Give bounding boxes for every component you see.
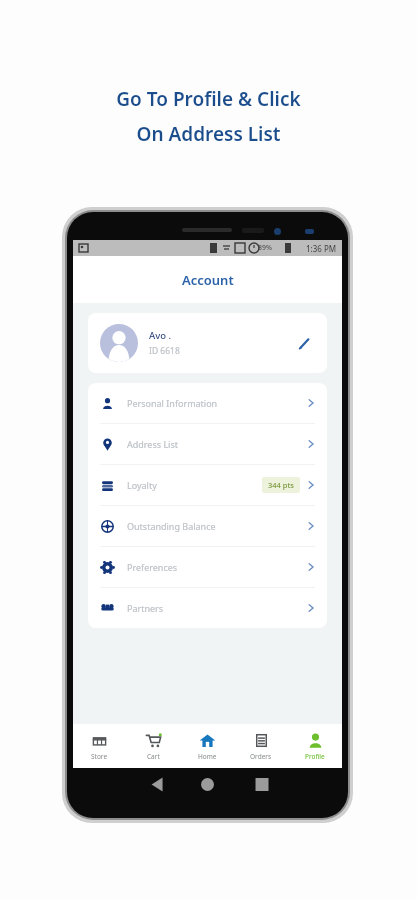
button[interactable]: Outstanding Balance: [88, 506, 327, 546]
staticText: Home: [198, 752, 217, 761]
button[interactable]: Orders: [234, 724, 288, 768]
button[interactable]: Cart: [126, 724, 180, 768]
staticText: Personal Information: [127, 397, 306, 409]
staticText: ID 6618: [149, 345, 180, 357]
button[interactable]: Address List: [88, 424, 327, 464]
button[interactable]: Preferences: [88, 547, 327, 587]
button[interactable]: Personal Information: [88, 383, 327, 423]
staticText: Account: [182, 271, 234, 289]
staticText: 89%: [258, 243, 272, 253]
staticText: Preferences: [127, 561, 306, 573]
staticText: 1:36 PM: [306, 243, 337, 254]
staticText: On Address List: [136, 121, 281, 147]
staticText: Cart: [147, 752, 160, 761]
button[interactable]: Edit profile: [293, 332, 315, 354]
button[interactable]: Avo .: [88, 313, 327, 373]
button[interactable]: Partners: [88, 588, 327, 628]
staticText: 344 pts: [268, 480, 294, 490]
staticText: Avo .: [149, 329, 172, 342]
staticText: Loyalty: [127, 479, 262, 491]
staticText: Address List: [127, 438, 306, 450]
staticText: Partners: [127, 602, 306, 614]
staticText: Store: [91, 752, 108, 761]
staticText: Profile: [305, 752, 325, 761]
staticText: Go To Profile & Click: [116, 86, 301, 112]
button[interactable]: Store: [73, 724, 126, 768]
button[interactable]: Loyalty: [88, 465, 327, 505]
button[interactable]: Home: [180, 724, 234, 768]
staticText: Orders: [250, 752, 272, 761]
button[interactable]: Profile: [288, 724, 342, 768]
staticText: Outstanding Balance: [127, 520, 306, 532]
